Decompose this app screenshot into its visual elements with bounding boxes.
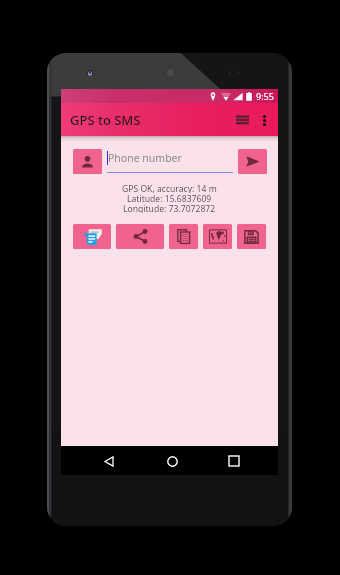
button[interactable]: Share <box>116 224 164 249</box>
staticText: GPS to SMS <box>70 111 141 129</box>
button[interactable]: Send via Messages <box>73 224 111 249</box>
staticText: GPS OK, accuracy: 14 m <box>122 183 217 193</box>
staticText: Latitude: 15.6837609 <box>127 193 212 203</box>
button[interactable]: List <box>233 111 251 129</box>
button[interactable]: More options <box>257 111 271 129</box>
button[interactable]: Pick contact <box>73 149 102 174</box>
button[interactable]: Open in map <box>203 224 232 249</box>
button[interactable]: Copy <box>169 224 198 249</box>
button[interactable]: Recent apps <box>223 450 245 472</box>
staticText: Phone number <box>108 151 182 165</box>
button[interactable]: Home <box>161 450 183 472</box>
button[interactable]: Send SMS <box>238 149 267 174</box>
staticText: 9:55 <box>256 90 274 102</box>
button[interactable]: Save <box>237 224 266 249</box>
staticText: Longitude: 73.7072872 <box>123 203 216 213</box>
button[interactable]: Back <box>98 450 120 472</box>
